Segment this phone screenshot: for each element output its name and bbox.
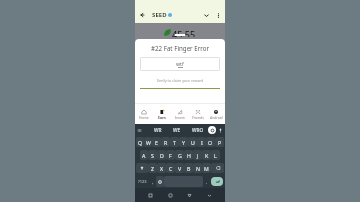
button[interactable]: T — [170, 137, 179, 147]
button[interactable]: C — [166, 163, 175, 173]
button[interactable]: Android — [207, 109, 225, 124]
staticText: V — [178, 165, 182, 172]
staticText: WE — [173, 127, 181, 134]
staticText: Android — [210, 115, 223, 120]
staticText: Verify to claim your reward — [135, 78, 225, 83]
staticText: Q — [138, 139, 143, 146]
staticText: J — [197, 152, 199, 159]
button[interactable]: V — [175, 163, 184, 173]
button[interactable]: E — [152, 137, 161, 147]
button[interactable]: Earn — [153, 109, 171, 124]
button[interactable]: A — [140, 150, 148, 160]
staticText: R — [164, 139, 168, 146]
staticText: U — [191, 139, 195, 146]
button[interactable]: Enter — [211, 177, 223, 186]
staticText: E — [155, 139, 158, 146]
staticText: Invest — [175, 115, 185, 120]
staticText: I — [201, 139, 203, 146]
button[interactable]: , — [149, 176, 156, 187]
button[interactable]: ?123 — [136, 176, 149, 187]
button[interactable]: More options — [214, 11, 223, 20]
button[interactable]: Emoji — [156, 176, 164, 187]
staticText: Y — [182, 139, 185, 146]
button[interactable]: G — [175, 150, 184, 160]
button[interactable]: Voice input — [217, 127, 224, 134]
staticText: WRO — [192, 127, 204, 134]
button[interactable]: L — [211, 150, 220, 160]
staticText: ?123 — [138, 179, 147, 184]
staticText: Z — [151, 165, 154, 172]
staticText: M — [204, 165, 209, 172]
staticText: WR — [154, 127, 162, 134]
button[interactable]: Invest — [171, 109, 189, 124]
staticText: D — [160, 152, 164, 159]
staticText: #22 Fat Finger Error — [135, 44, 225, 52]
staticText: F — [169, 152, 172, 159]
button[interactable]: Friends — [189, 109, 207, 124]
button[interactable]: K — [202, 150, 211, 160]
button[interactable]: Back — [185, 191, 194, 200]
staticText: N — [196, 165, 200, 172]
button[interactable]: R — [161, 137, 170, 147]
staticText: Friends — [192, 115, 204, 120]
button[interactable]: Shift — [136, 163, 148, 173]
button[interactable]: Recents — [146, 191, 155, 200]
button[interactable]: X — [157, 163, 166, 173]
staticText: Home — [139, 115, 149, 120]
staticText: K — [205, 152, 209, 159]
staticText: A — [142, 152, 146, 159]
button[interactable]: Search — [208, 126, 216, 134]
staticText: SEED — [152, 11, 167, 19]
button[interactable]: . — [203, 176, 210, 187]
button[interactable]: H — [184, 150, 193, 160]
button[interactable]: Y — [179, 137, 188, 147]
staticText: L — [214, 152, 217, 159]
staticText: S — [151, 152, 154, 159]
button[interactable]: J — [193, 150, 202, 160]
staticText: wtf — [176, 60, 184, 67]
button[interactable]: Home — [135, 109, 153, 124]
button[interactable]: B — [184, 163, 193, 173]
button[interactable]: Z — [148, 163, 157, 173]
staticText: X — [160, 165, 164, 172]
button[interactable]: Expand — [202, 11, 211, 20]
button[interactable]: U — [188, 137, 197, 147]
button[interactable]: Hide keyboard — [205, 191, 214, 200]
staticText: C — [169, 165, 173, 172]
button[interactable]: Back — [138, 11, 146, 19]
button[interactable]: Home — [166, 191, 175, 200]
button[interactable]: wtf — [140, 57, 220, 71]
staticText: Earn — [158, 115, 166, 120]
button[interactable]: D — [157, 150, 166, 160]
button[interactable]: Q — [136, 137, 144, 147]
staticText: , — [152, 178, 154, 185]
staticText: O — [208, 139, 213, 146]
button[interactable]: M — [202, 163, 211, 173]
staticText: G — [178, 152, 182, 159]
button[interactable]: Backspace — [211, 163, 224, 173]
staticText: B — [187, 165, 191, 172]
staticText: P — [218, 139, 222, 146]
button[interactable]: S — [148, 150, 157, 160]
staticText: H — [187, 152, 191, 159]
button[interactable]: F — [166, 150, 175, 160]
button[interactable]: I — [197, 137, 206, 147]
staticText: W — [146, 139, 151, 146]
button[interactable]: P — [215, 137, 224, 147]
button[interactable]: W — [144, 137, 152, 147]
button[interactable]: O — [206, 137, 215, 147]
staticText: 45.55 — [172, 28, 196, 37]
staticText: T — [173, 139, 176, 146]
button[interactable]: N — [193, 163, 202, 173]
staticText: . — [206, 178, 208, 185]
